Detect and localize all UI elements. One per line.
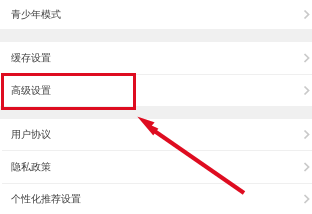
button[interactable]: 高级设置	[0, 75, 312, 106]
staticText: 隐私政策	[11, 161, 51, 173]
staticText: 高级设置	[11, 84, 51, 97]
staticText: 用户协议	[11, 128, 51, 141]
staticText: 缓存设置	[11, 52, 51, 64]
button[interactable]: 缓存设置	[0, 42, 312, 74]
button[interactable]: 用户协议	[0, 119, 312, 150]
staticText: 青少年模式	[11, 8, 61, 21]
button[interactable]: 隐私政策	[0, 151, 312, 183]
staticText: 个性化推荐设置	[11, 193, 81, 205]
button[interactable]: 青少年模式	[0, 0, 312, 29]
button[interactable]: 个性化推荐设置	[0, 184, 312, 214]
